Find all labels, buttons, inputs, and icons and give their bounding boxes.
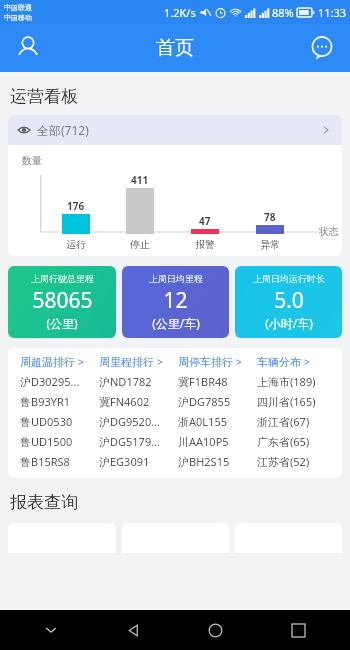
staticText: 周超温排行 bbox=[20, 355, 75, 369]
staticText: 176 bbox=[67, 199, 85, 213]
staticText: 周停车排行 bbox=[178, 355, 233, 369]
staticText: 异常 bbox=[260, 238, 280, 251]
staticText: 沪DG7855 bbox=[178, 394, 257, 409]
button[interactable]: 周停车排行 bbox=[178, 355, 257, 369]
staticText: 沪BH2S15 bbox=[178, 454, 257, 469]
staticText: (公里) bbox=[46, 315, 78, 331]
staticText: 沪DG9520... bbox=[99, 414, 178, 429]
staticText: 1.2K/s bbox=[164, 5, 196, 20]
staticText: 广东省(65) bbox=[257, 434, 336, 449]
staticText: 上周行驶总里程 bbox=[31, 273, 94, 284]
button[interactable]: Profile bbox=[10, 30, 46, 66]
staticText: 全部(712) bbox=[37, 122, 89, 138]
staticText: > bbox=[78, 355, 84, 369]
staticText: 报表查询 bbox=[10, 492, 78, 513]
staticText: 上海市(189) bbox=[257, 374, 336, 389]
staticText: 停止 bbox=[130, 238, 150, 251]
staticText: 车辆分布 bbox=[257, 355, 301, 369]
staticText: 冀F1BR48 bbox=[178, 374, 257, 389]
staticText: 上周日均运行时长 bbox=[253, 273, 325, 284]
button[interactable]: 周超温排行 bbox=[20, 355, 99, 369]
staticText: 中国移动 bbox=[4, 13, 32, 22]
staticText: 鲁UD1500 bbox=[20, 434, 99, 449]
staticText: 数量 bbox=[22, 154, 42, 167]
staticText: 沪EG3091 bbox=[99, 454, 178, 469]
button[interactable]: 全部(712) bbox=[8, 115, 342, 145]
staticText: 四川省(165) bbox=[257, 394, 336, 409]
button[interactable]: 车辆分布 bbox=[257, 355, 336, 369]
staticText: 首页 bbox=[156, 36, 194, 60]
button[interactable]: Back bbox=[92, 610, 174, 650]
staticText: 中国联通 bbox=[4, 3, 32, 12]
staticText: 11:33 bbox=[318, 5, 347, 20]
staticText: (小时/车) bbox=[265, 315, 313, 331]
staticText: (公里/车) bbox=[152, 315, 200, 331]
staticText: 鲁UD0530 bbox=[20, 414, 99, 429]
staticText: 周里程排行 bbox=[99, 355, 154, 369]
staticText: 运行 bbox=[66, 238, 86, 251]
staticText: 88% bbox=[272, 5, 294, 20]
staticText: 47 bbox=[199, 214, 211, 228]
button[interactable]: 周里程排行 bbox=[99, 355, 178, 369]
staticText: 江苏省(52) bbox=[257, 454, 336, 469]
staticText: 411 bbox=[131, 173, 149, 187]
staticText: 川AA10P5 bbox=[178, 434, 257, 449]
staticText: 沪ND1782 bbox=[99, 374, 178, 389]
button[interactable]: 上周日均运行时长 bbox=[235, 266, 342, 338]
button[interactable]: 上周日均里程 bbox=[122, 266, 229, 338]
staticText: 沪DG5179... bbox=[99, 434, 178, 449]
staticText: 鲁B15RS8 bbox=[20, 454, 99, 469]
staticText: 鲁B93YR1 bbox=[20, 394, 99, 409]
staticText: 冀FN4602 bbox=[99, 394, 178, 409]
staticText: 报警 bbox=[195, 238, 215, 251]
staticText: 浙A0L155 bbox=[178, 414, 257, 429]
button[interactable]: 上周行驶总里程 bbox=[8, 266, 116, 338]
staticText: 12 bbox=[163, 286, 188, 315]
staticText: 状态 bbox=[319, 225, 339, 238]
staticText: 运营看板 bbox=[10, 86, 78, 107]
button[interactable]: Messages bbox=[304, 30, 340, 66]
button[interactable]: Recents bbox=[257, 610, 340, 650]
staticText: > bbox=[304, 355, 310, 369]
staticText: 78 bbox=[264, 210, 276, 224]
staticText: 58065 bbox=[32, 286, 93, 315]
button[interactable]: Hide keyboard bbox=[10, 610, 92, 650]
staticText: 沪D30295... bbox=[20, 374, 99, 389]
staticText: > bbox=[236, 355, 242, 369]
staticText: > bbox=[157, 355, 163, 369]
staticText: 5.0 bbox=[274, 286, 304, 315]
staticText: 浙江省(67) bbox=[257, 414, 336, 429]
staticText: 上周日均里程 bbox=[149, 273, 203, 284]
button[interactable]: Home bbox=[174, 610, 257, 650]
